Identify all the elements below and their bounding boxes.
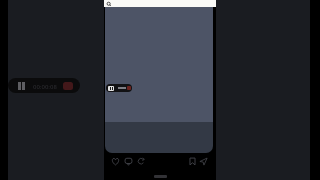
other: Share bbox=[199, 157, 208, 166]
other: Repost bbox=[137, 157, 146, 166]
button[interactable]: Pause bbox=[106, 84, 132, 92]
other: Save bbox=[188, 157, 197, 166]
button[interactable]: Comment bbox=[123, 156, 134, 167]
other: Pause bbox=[108, 86, 114, 91]
button[interactable]: Share bbox=[198, 156, 209, 167]
staticText: 00:00:08 bbox=[33, 83, 57, 91]
other: Stop recording bbox=[127, 86, 131, 90]
button[interactable]: Pause bbox=[8, 78, 80, 93]
button[interactable]: Repost bbox=[136, 156, 147, 167]
other: Comment bbox=[124, 157, 133, 166]
button[interactable]: Pause bbox=[14, 80, 28, 91]
other: Like bbox=[111, 157, 120, 166]
button[interactable]: Save bbox=[187, 156, 198, 167]
button[interactable]: Like bbox=[110, 156, 121, 167]
button[interactable]: Stop recording bbox=[63, 82, 73, 90]
